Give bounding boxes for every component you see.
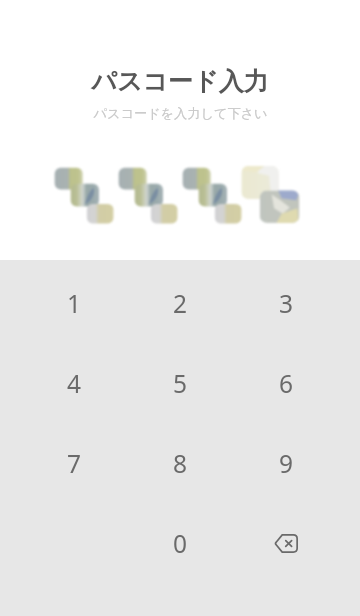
staticText: 0 bbox=[173, 527, 188, 560]
staticText: 7 bbox=[67, 447, 82, 480]
button[interactable]: 9 bbox=[233, 423, 339, 503]
button[interactable]: 8 bbox=[127, 423, 233, 503]
button[interactable]: 2 bbox=[127, 263, 233, 343]
button[interactable]: Delete bbox=[233, 503, 339, 583]
button[interactable]: 5 bbox=[127, 343, 233, 423]
button[interactable]: 4 bbox=[21, 343, 127, 423]
staticText: 2 bbox=[173, 287, 188, 320]
staticText: 1 bbox=[67, 287, 82, 320]
staticText: 5 bbox=[173, 367, 188, 400]
staticText: 8 bbox=[173, 447, 188, 480]
staticText: パスコード入力 bbox=[91, 66, 269, 97]
other: Delete bbox=[274, 534, 298, 553]
staticText: 9 bbox=[279, 447, 294, 480]
button[interactable]: 3 bbox=[233, 263, 339, 343]
staticText: 6 bbox=[279, 367, 294, 400]
staticText: 3 bbox=[279, 287, 294, 320]
staticText: パスコードを入力して下さい bbox=[93, 105, 268, 122]
button[interactable]: 1 bbox=[21, 263, 127, 343]
button[interactable]: 0 bbox=[127, 503, 233, 583]
button[interactable]: 6 bbox=[233, 343, 339, 423]
button[interactable]: 7 bbox=[21, 423, 127, 503]
staticText: 4 bbox=[67, 367, 82, 400]
